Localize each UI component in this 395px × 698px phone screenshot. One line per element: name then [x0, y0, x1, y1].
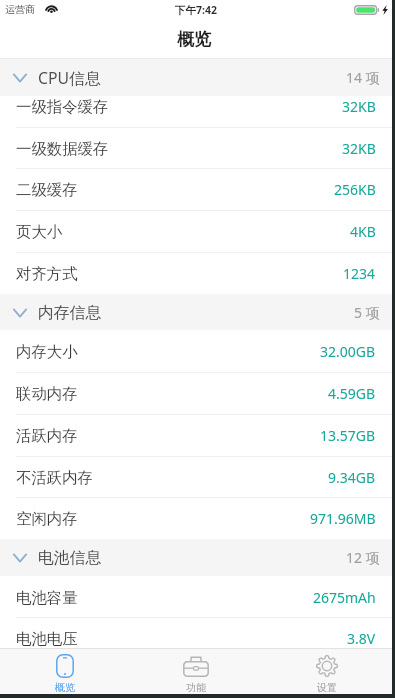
staticText: 14 项 [346, 68, 380, 87]
staticText: 4KB [350, 222, 376, 241]
staticText: 下午7:42 [175, 3, 217, 17]
staticText: 空闲内存 [16, 509, 78, 528]
button[interactable]: CPU信息 [0, 59, 395, 96]
button[interactable]: 一级指令缓存 [0, 85, 395, 127]
button[interactable]: 联动内存 [0, 372, 395, 414]
staticText: 联动内存 [16, 384, 78, 403]
staticText: 不活跃内存 [16, 468, 93, 487]
staticText: 概览 [55, 681, 75, 694]
button[interactable]: CPU信息 [0, 59, 395, 85]
button[interactable]: 电池电压 [0, 617, 395, 648]
staticText: 4.59GB [328, 384, 376, 403]
staticText: 12 项 [346, 548, 380, 567]
staticText: CPU信息 [38, 59, 101, 78]
button[interactable]: 空闲内存 [0, 497, 395, 539]
staticText: 运营商 [5, 3, 35, 16]
staticText: 3.8V [347, 629, 376, 648]
button[interactable]: 电池容量 [0, 576, 395, 618]
staticText: 电池容量 [16, 588, 78, 607]
button[interactable]: 内存信息 [0, 294, 395, 331]
staticText: 5 项 [354, 303, 380, 322]
staticText: 电池信息 [38, 548, 102, 568]
staticText: 9.34GB [328, 468, 376, 487]
staticText: 一级数据缓存 [16, 139, 109, 158]
button[interactable]: Functions [130, 648, 261, 698]
staticText: 内存大小 [16, 342, 78, 361]
staticText: CPU信息 [38, 67, 101, 89]
button[interactable]: 对齐方式 [0, 252, 395, 294]
button[interactable]: Overview [0, 648, 130, 698]
staticText: 页大小 [16, 222, 63, 241]
button[interactable]: 二级缓存 [0, 168, 395, 210]
button[interactable]: 电池信息 [0, 539, 395, 576]
staticText: 32KB [342, 97, 376, 116]
staticText: 功能 [186, 681, 206, 694]
staticText: 对齐方式 [16, 264, 78, 283]
staticText: 概览 [177, 29, 211, 50]
button[interactable]: 不活跃内存 [0, 456, 395, 498]
staticText: 256KB [334, 180, 376, 199]
button[interactable]: 一级数据缓存 [0, 127, 395, 169]
staticText: 32KB [342, 139, 376, 158]
staticText: 活跃内存 [16, 426, 78, 445]
button[interactable]: 活跃内存 [0, 414, 395, 456]
staticText: 13.57GB [320, 426, 376, 445]
staticText: 二级缓存 [16, 180, 78, 199]
staticText: 32.00GB [320, 342, 376, 361]
button[interactable]: 页大小 [0, 210, 395, 252]
staticText: 一级指令缓存 [16, 97, 109, 116]
staticText: 设置 [317, 681, 337, 694]
staticText: 971.96MB [310, 509, 376, 528]
staticText: 电池电压 [16, 629, 78, 648]
staticText: 1234 [343, 264, 376, 283]
button[interactable]: 内存大小 [0, 330, 395, 372]
staticText: 2675mAh [313, 588, 376, 607]
staticText: 内存信息 [38, 303, 102, 323]
button[interactable]: Settings [261, 648, 392, 698]
staticText: 14 项 [346, 59, 380, 76]
